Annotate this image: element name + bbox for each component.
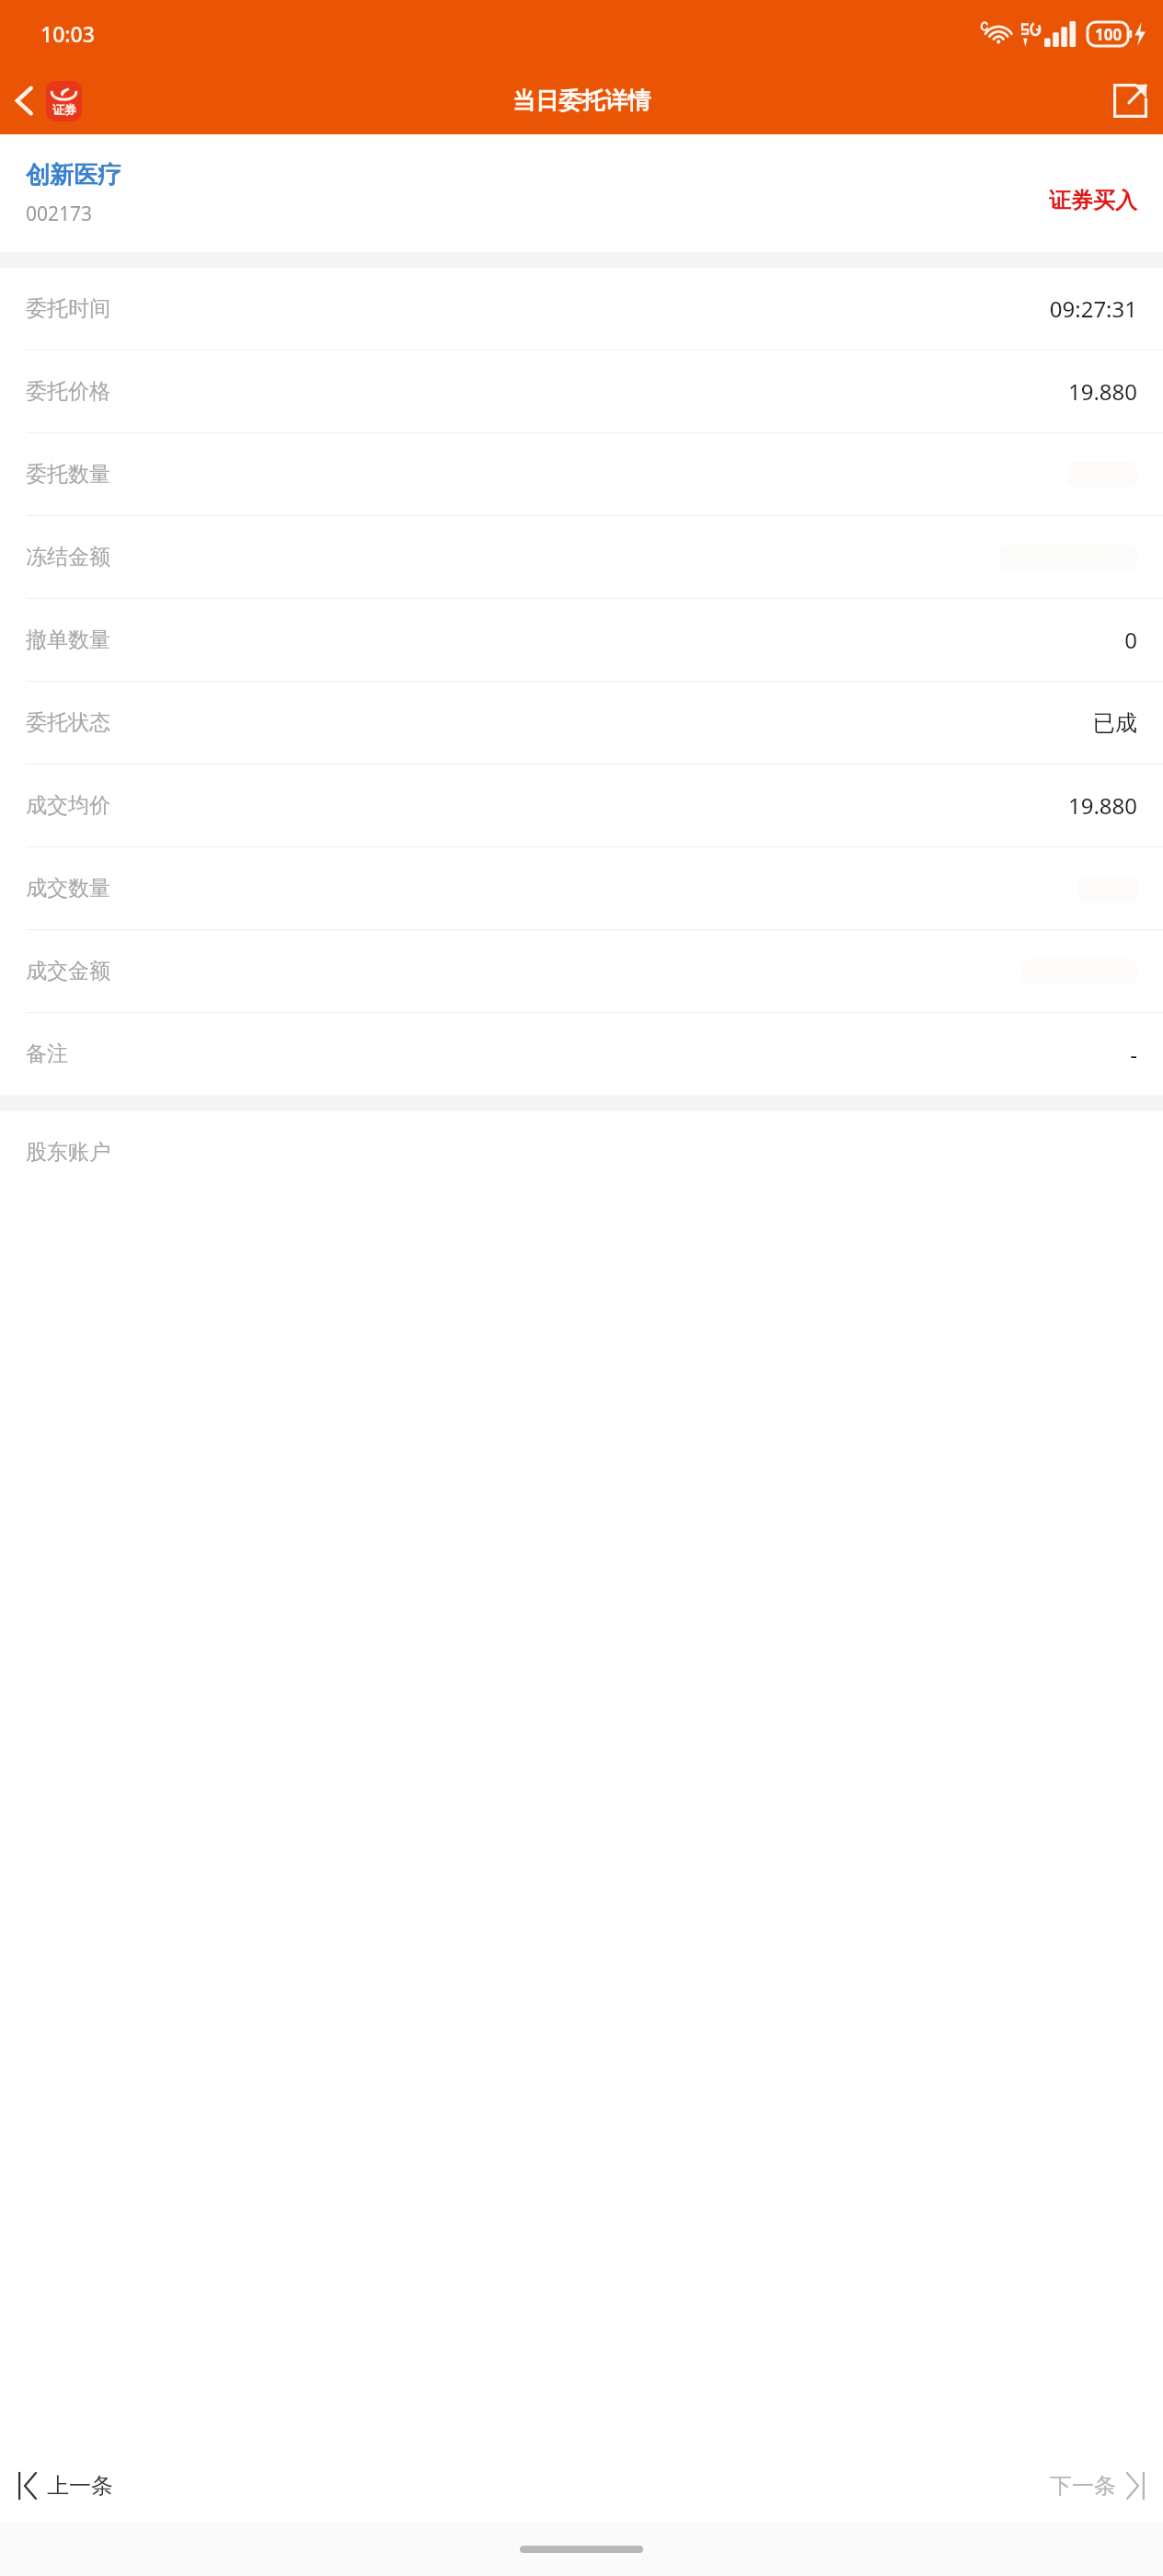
staticText: 当日委托详情 (512, 86, 651, 115)
staticText: 委托时间 (26, 295, 110, 322)
staticText: 100 (1095, 24, 1123, 45)
staticText: 冻结金额 (26, 544, 110, 570)
staticText: 股东账户 (26, 1139, 110, 1166)
staticText: 002173 (26, 201, 93, 227)
staticText: 0 (1124, 625, 1137, 655)
button[interactable]: 成交均价 (0, 765, 1163, 846)
button[interactable]: Share (1098, 67, 1163, 134)
staticText: 已成 (1093, 709, 1137, 737)
button[interactable]: Back (0, 67, 91, 134)
button[interactable]: 成交金额 (0, 930, 1163, 1012)
button[interactable]: 委托数量 (0, 433, 1163, 515)
button[interactable]: 下一条 (1031, 2449, 1163, 2523)
button[interactable]: 委托状态 (0, 682, 1163, 764)
button[interactable]: 股东账户 (0, 1111, 1163, 1193)
button[interactable]: 备注 (0, 1013, 1163, 1095)
staticText: 09:27:31 (1049, 293, 1137, 324)
button[interactable]: 创新医疗 (0, 134, 1163, 252)
staticText: 19.880 (1067, 790, 1137, 821)
button[interactable]: 撤单数量 (0, 599, 1163, 681)
button[interactable]: 成交数量 (0, 847, 1163, 929)
button[interactable]: 委托时间 (0, 268, 1163, 350)
staticText: 成交金额 (26, 958, 110, 984)
button[interactable]: Previous (0, 2449, 132, 2523)
staticText: 委托价格 (26, 378, 110, 405)
staticText: 上一条 (47, 2472, 113, 2500)
staticText: 备注 (26, 1041, 68, 1067)
staticText: 撤单数量 (26, 627, 110, 653)
staticText: 10:03 (40, 19, 95, 48)
staticText: 证券买入 (1049, 187, 1137, 214)
other: Previous (18, 2473, 37, 2499)
staticText: 成交数量 (26, 875, 110, 902)
staticText: 委托数量 (26, 461, 110, 488)
other: Next (1126, 2473, 1145, 2499)
staticText: 委托状态 (26, 709, 110, 736)
staticText: - (1130, 1039, 1137, 1069)
staticText: 创新医疗 (26, 160, 121, 190)
button[interactable]: 委托价格 (0, 351, 1163, 432)
staticText: 19.880 (1067, 376, 1137, 407)
staticText: 证券 (52, 102, 76, 117)
staticText: 成交均价 (26, 792, 110, 819)
staticText: 下一条 (1050, 2472, 1116, 2500)
button[interactable]: 冻结金额 (0, 516, 1163, 598)
